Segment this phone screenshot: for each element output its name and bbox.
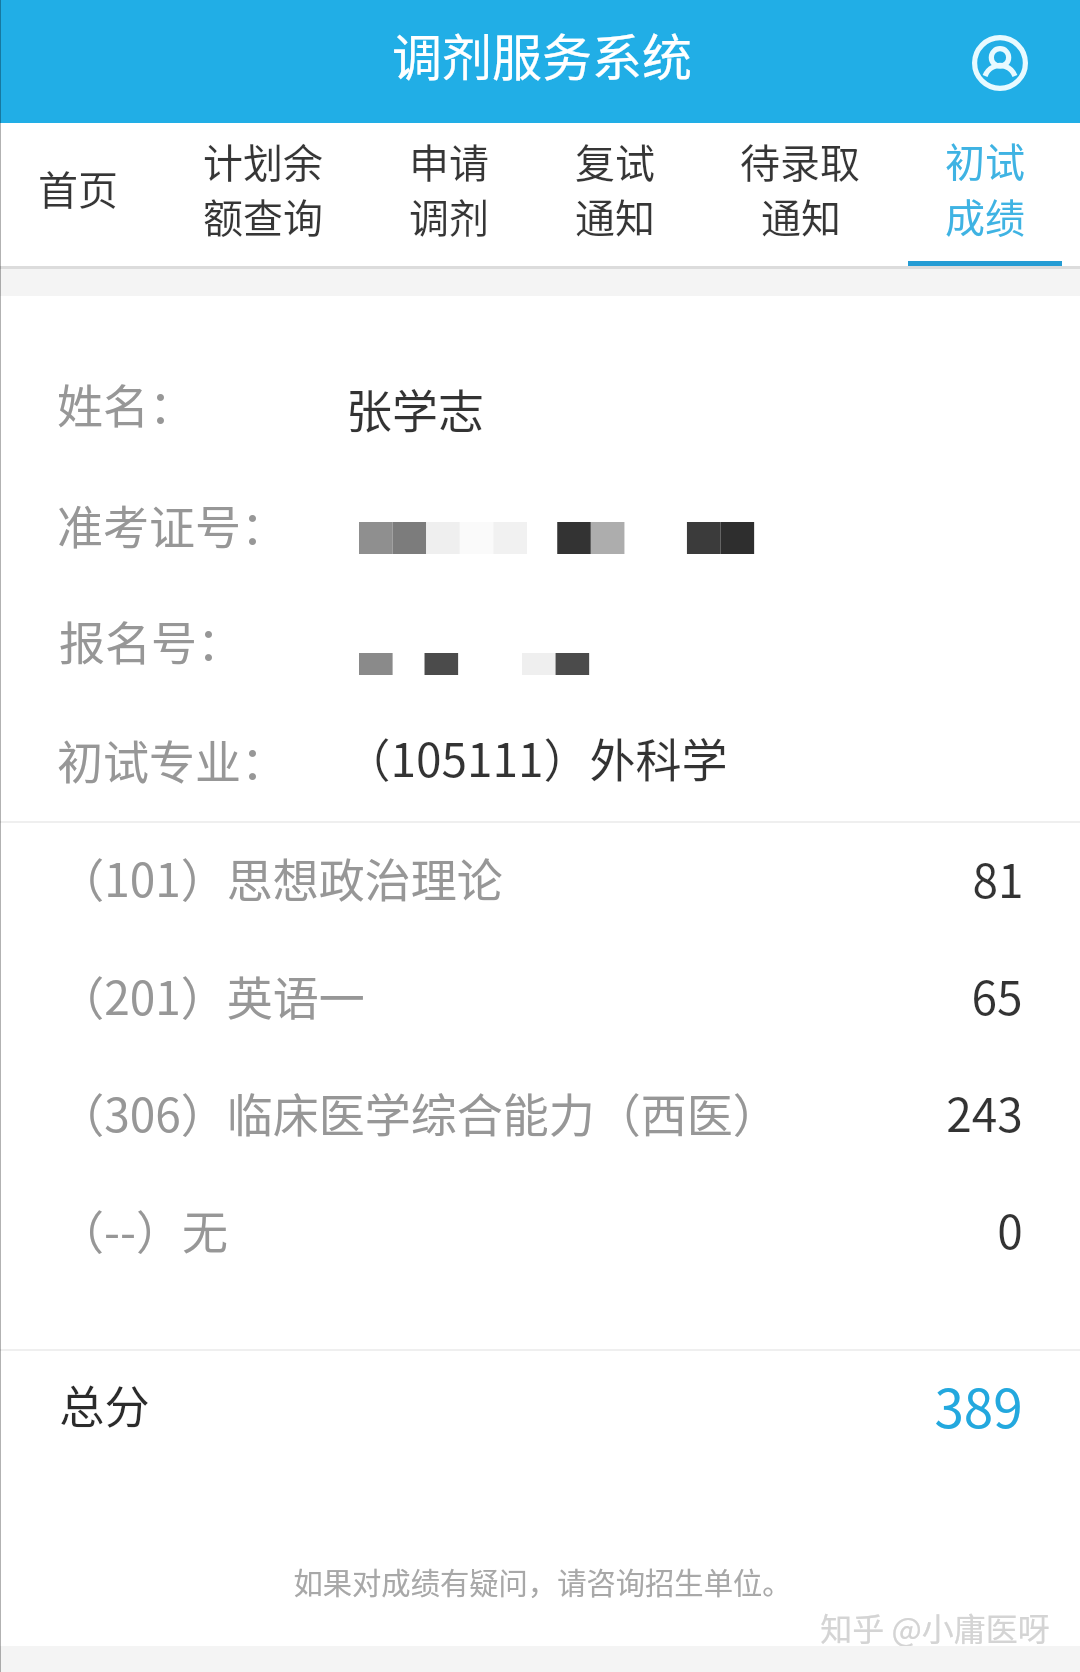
button[interactable]: 计划余	[165, 123, 350, 266]
staticText: 243	[946, 1079, 1023, 1146]
staticText: 计划余	[203, 132, 323, 190]
staticText: 65	[971, 962, 1023, 1029]
button[interactable]: 待录取	[706, 123, 896, 266]
staticText: （105111）外科学	[344, 724, 728, 791]
button[interactable]: 初试	[902, 123, 1070, 266]
staticText: 报名号：	[59, 607, 243, 674]
staticText: 总分	[59, 1372, 150, 1437]
staticText: 如果对成绩有疑问，请咨询招生单位。	[293, 1560, 792, 1602]
staticText: 389	[934, 1367, 1023, 1444]
staticText: （101）思想政治理论	[58, 844, 503, 911]
staticText: 初试	[945, 131, 1025, 189]
staticText: 姓名：	[57, 370, 195, 437]
staticText: 调剂	[409, 187, 489, 245]
staticText: 0	[997, 1196, 1023, 1263]
staticText: 初试专业：	[57, 726, 287, 793]
staticText: 知乎 @小庸医呀	[820, 1604, 1050, 1650]
staticText: （--）无	[58, 1196, 228, 1263]
staticText: （201）英语一	[58, 962, 365, 1029]
button[interactable]: （306）临床医学综合能力（西医）	[0, 1057, 1080, 1174]
staticText: 通知	[575, 187, 655, 245]
staticText: （306）临床医学综合能力（西医）	[58, 1079, 779, 1146]
button[interactable]: 申请	[358, 123, 528, 266]
staticText: 首页	[38, 159, 118, 217]
button[interactable]: 首页	[0, 123, 160, 266]
staticText: 通知	[761, 187, 841, 245]
staticText: 复试	[575, 132, 655, 190]
button[interactable]: （--）无	[0, 1174, 1080, 1291]
staticText: 张学志	[346, 375, 484, 442]
staticText: 待录取	[740, 132, 860, 190]
staticText: 申请	[409, 132, 489, 190]
button[interactable]: （201）英语一	[0, 940, 1080, 1057]
staticText: 准考证号：	[57, 491, 287, 558]
button[interactable]: Account	[961, 24, 1039, 102]
button[interactable]: （101）思想政治理论	[0, 823, 1080, 940]
button[interactable]: 总分	[0, 1351, 1080, 1463]
staticText: 调剂服务系统	[392, 18, 692, 90]
button[interactable]: 复试	[534, 123, 700, 266]
staticText: 成绩	[945, 187, 1025, 245]
staticText: 额查询	[203, 187, 323, 245]
staticText: 81	[972, 845, 1024, 912]
